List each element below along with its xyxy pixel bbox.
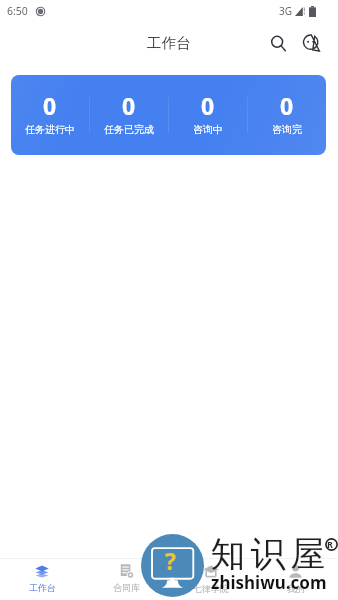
staticText: 0 xyxy=(201,90,215,121)
staticText: R xyxy=(327,538,333,550)
staticText: 七律学院 xyxy=(193,583,229,594)
staticText: zhishiwu.com xyxy=(211,571,327,594)
button[interactable]: 0 xyxy=(11,75,89,155)
button[interactable]: 七律学院 xyxy=(168,559,253,600)
button[interactable]: 0 xyxy=(89,75,168,155)
staticText: 咨询中 xyxy=(193,123,223,136)
button[interactable]: 我的 xyxy=(253,559,338,600)
staticText: 0 xyxy=(43,90,57,121)
button[interactable]: 工作台 xyxy=(0,559,84,600)
button[interactable]: 合同库 xyxy=(84,559,168,600)
button[interactable]: 0 xyxy=(168,75,247,155)
staticText: 3G xyxy=(279,4,292,18)
staticText: 咨询完 xyxy=(272,123,302,136)
staticText: 6:50 xyxy=(7,4,28,18)
staticText: 知识屋 xyxy=(208,532,328,576)
staticText: 工作台 xyxy=(147,34,191,52)
button[interactable]: Search xyxy=(263,28,293,58)
staticText: ? xyxy=(165,545,176,576)
staticText: 0 xyxy=(280,90,294,121)
button[interactable]: 0 xyxy=(247,75,326,155)
button[interactable]: Messages xyxy=(296,28,326,58)
staticText: 合同库 xyxy=(113,582,140,593)
staticText: 0 xyxy=(122,90,136,121)
staticText: 任务已完成 xyxy=(104,123,154,136)
staticText: 工作台 xyxy=(29,582,56,593)
staticText: 我的 xyxy=(287,583,305,594)
staticText: 任务进行中 xyxy=(25,123,75,136)
